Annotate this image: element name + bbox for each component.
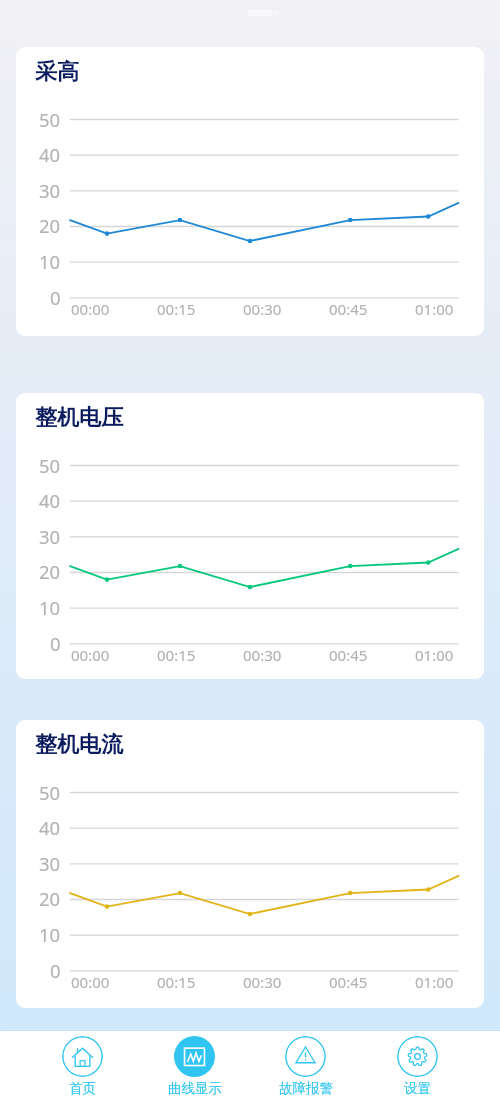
other: Fault alarm <box>285 1036 326 1077</box>
staticText: 首页 <box>69 1080 96 1097</box>
staticText: 00:45 <box>329 972 368 992</box>
staticText: 20 <box>39 559 61 584</box>
staticText: 故障报警 <box>279 1080 333 1097</box>
staticText: 40 <box>39 488 61 513</box>
button[interactable]: Fault alarm <box>277 1031 334 1100</box>
staticText: 20 <box>39 886 61 911</box>
staticText: 00:45 <box>329 645 368 665</box>
staticText: 40 <box>39 815 61 840</box>
staticText: 00:00 <box>71 645 110 665</box>
staticText: 采高 <box>35 58 79 86</box>
button[interactable]: Settings <box>389 1031 446 1100</box>
staticText: 00:15 <box>157 645 196 665</box>
staticText: 0 <box>50 285 61 310</box>
staticText: 曲线显示 <box>168 1080 222 1097</box>
staticText: 整机电流 <box>35 731 123 759</box>
staticText: 00:30 <box>243 972 282 992</box>
staticText: 30 <box>39 178 61 203</box>
other: Settings <box>397 1036 438 1077</box>
staticText: 50 <box>39 107 61 132</box>
staticText: 00:30 <box>243 299 282 319</box>
staticText: 40 <box>39 142 61 167</box>
staticText: 01:00 <box>415 299 454 319</box>
staticText: 00:15 <box>157 972 196 992</box>
staticText: 10 <box>39 249 61 274</box>
staticText: 00:30 <box>243 645 282 665</box>
staticText: 设置 <box>404 1080 431 1097</box>
staticText: 00:45 <box>329 299 368 319</box>
other: Curve display <box>174 1036 215 1077</box>
staticText: 整机电压 <box>35 404 123 432</box>
staticText: 30 <box>39 524 61 549</box>
staticText: 00:00 <box>71 299 110 319</box>
staticText: 20 <box>39 213 61 238</box>
button[interactable]: Curve display <box>166 1031 223 1100</box>
staticText: 50 <box>39 453 61 478</box>
staticText: 0 <box>50 631 61 656</box>
staticText: 30 <box>39 851 61 876</box>
staticText: 00:15 <box>157 299 196 319</box>
staticText: 0 <box>50 958 61 983</box>
other: Home <box>62 1036 103 1077</box>
staticText: 50 <box>39 780 61 805</box>
staticText: 01:00 <box>415 972 454 992</box>
staticText: 01:00 <box>415 645 454 665</box>
staticText: 00:00 <box>71 972 110 992</box>
button[interactable]: Home <box>54 1031 111 1100</box>
staticText: 10 <box>39 922 61 947</box>
staticText: 10 <box>39 595 61 620</box>
